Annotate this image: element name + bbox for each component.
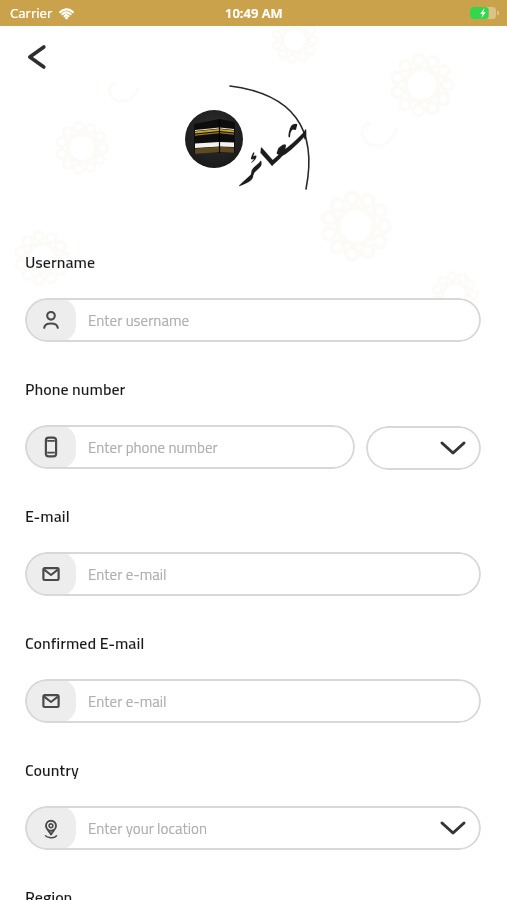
staticText: Enter e-mail <box>88 690 167 713</box>
staticText: Carrier <box>10 4 53 22</box>
button[interactable] <box>366 426 481 470</box>
staticText: Enter phone number <box>88 436 218 459</box>
staticText: Phone number <box>25 377 126 401</box>
button[interactable]: Enter your location <box>25 806 481 850</box>
staticText: Confirmed E-mail <box>25 631 145 655</box>
button[interactable]: Enter e-mail <box>25 552 481 596</box>
staticText: Enter username <box>88 309 190 332</box>
staticText: Country <box>25 758 79 782</box>
button[interactable]: Enter e-mail <box>25 679 481 723</box>
staticText: Region <box>25 885 73 900</box>
button[interactable] <box>18 38 56 76</box>
button[interactable]: Enter phone number <box>25 425 355 469</box>
staticText: شعائر <box>218 105 319 194</box>
staticText: Username <box>25 250 96 274</box>
staticText: Enter e-mail <box>88 563 167 586</box>
staticText: E-mail <box>25 504 70 528</box>
button[interactable]: Enter username <box>25 298 481 342</box>
staticText: Enter your location <box>88 817 208 840</box>
staticText: 10:49 AM <box>225 4 283 22</box>
